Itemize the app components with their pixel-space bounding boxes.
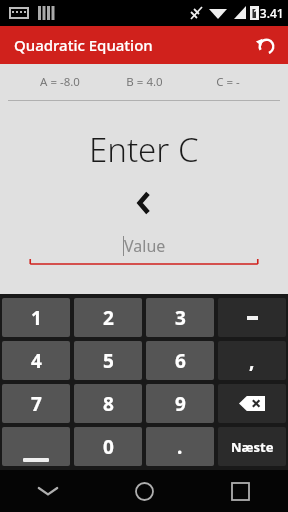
staticText: A = -8.0 — [40, 74, 80, 90]
button[interactable]: 6 — [146, 341, 214, 380]
button[interactable]: Home — [96, 470, 192, 512]
staticText: 7 — [31, 391, 42, 417]
button[interactable]: Reset — [250, 29, 282, 61]
button[interactable]: 8 — [74, 384, 142, 423]
button[interactable]: del — [218, 384, 286, 423]
staticText: B = 4.0 — [126, 74, 163, 90]
button[interactable]: Recents — [192, 470, 288, 512]
button[interactable]: Hide keyboard — [0, 470, 96, 512]
button[interactable]: Previous — [122, 188, 166, 218]
button[interactable]: 4 — [2, 341, 70, 380]
staticText: 6 — [175, 348, 186, 374]
button[interactable]: Næste — [218, 427, 286, 466]
button[interactable]: space — [2, 427, 70, 466]
staticText: 4 — [31, 348, 42, 374]
staticText: 5 — [103, 348, 114, 374]
button[interactable]: 3 — [146, 298, 214, 337]
button[interactable]: 7 — [2, 384, 70, 423]
button[interactable]: 1 — [2, 298, 70, 337]
staticText: Quadratic Equation — [14, 35, 153, 55]
staticText: Value — [124, 235, 166, 257]
staticText: 9 — [175, 391, 186, 417]
staticText: 3 — [175, 305, 186, 331]
staticText: 13.41 — [253, 5, 284, 21]
staticText: . — [177, 434, 183, 460]
button[interactable]: , — [218, 341, 286, 380]
staticText: , — [249, 348, 255, 374]
staticText: 0 — [103, 434, 114, 460]
button[interactable]: 0 — [74, 427, 142, 466]
staticText: 1 — [31, 305, 42, 331]
button[interactable]: 2 — [74, 298, 142, 337]
staticText: 8 — [103, 391, 114, 417]
button[interactable]: - — [218, 298, 286, 337]
staticText: 2 — [103, 305, 114, 331]
staticText: Næste — [231, 438, 274, 456]
staticText: Enter C — [89, 127, 199, 172]
button[interactable]: . — [146, 427, 214, 466]
button[interactable]: 9 — [146, 384, 214, 423]
staticText: C = - — [216, 74, 240, 90]
button[interactable]: 5 — [74, 341, 142, 380]
